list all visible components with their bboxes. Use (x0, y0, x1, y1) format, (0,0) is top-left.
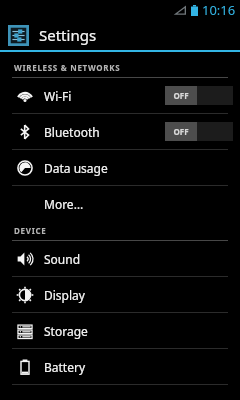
staticText: Battery (44, 359, 86, 375)
staticText: DEVICE (14, 225, 47, 236)
other: Settings (8, 25, 29, 46)
staticText: WIRELESS & NETWORKS (14, 62, 121, 73)
staticText: Settings (39, 25, 97, 45)
button[interactable]: Wi-Fi (0, 78, 240, 113)
staticText: Display (44, 287, 85, 303)
staticText: OFF (173, 90, 189, 101)
button[interactable]: Storage (0, 313, 240, 348)
staticText: More… (44, 196, 84, 212)
staticText: 10:16 (202, 1, 236, 19)
button[interactable]: Bluetooth off (165, 122, 233, 141)
button[interactable]: Bluetooth (0, 114, 240, 149)
button[interactable]: More… (0, 186, 240, 221)
staticText: Storage (44, 323, 88, 339)
button[interactable]: Battery (0, 349, 240, 384)
button[interactable]: Wi-Fi off (165, 86, 233, 105)
button[interactable]: Data usage (0, 150, 240, 185)
staticText: Wi-Fi (44, 88, 72, 104)
button[interactable]: Settings (0, 20, 240, 50)
button[interactable]: Display (0, 277, 240, 312)
staticText: Data usage (44, 160, 108, 176)
staticText: Sound (44, 251, 81, 267)
staticText: Bluetooth (44, 124, 100, 140)
button[interactable]: Sound (0, 241, 240, 276)
staticText: OFF (173, 126, 189, 137)
